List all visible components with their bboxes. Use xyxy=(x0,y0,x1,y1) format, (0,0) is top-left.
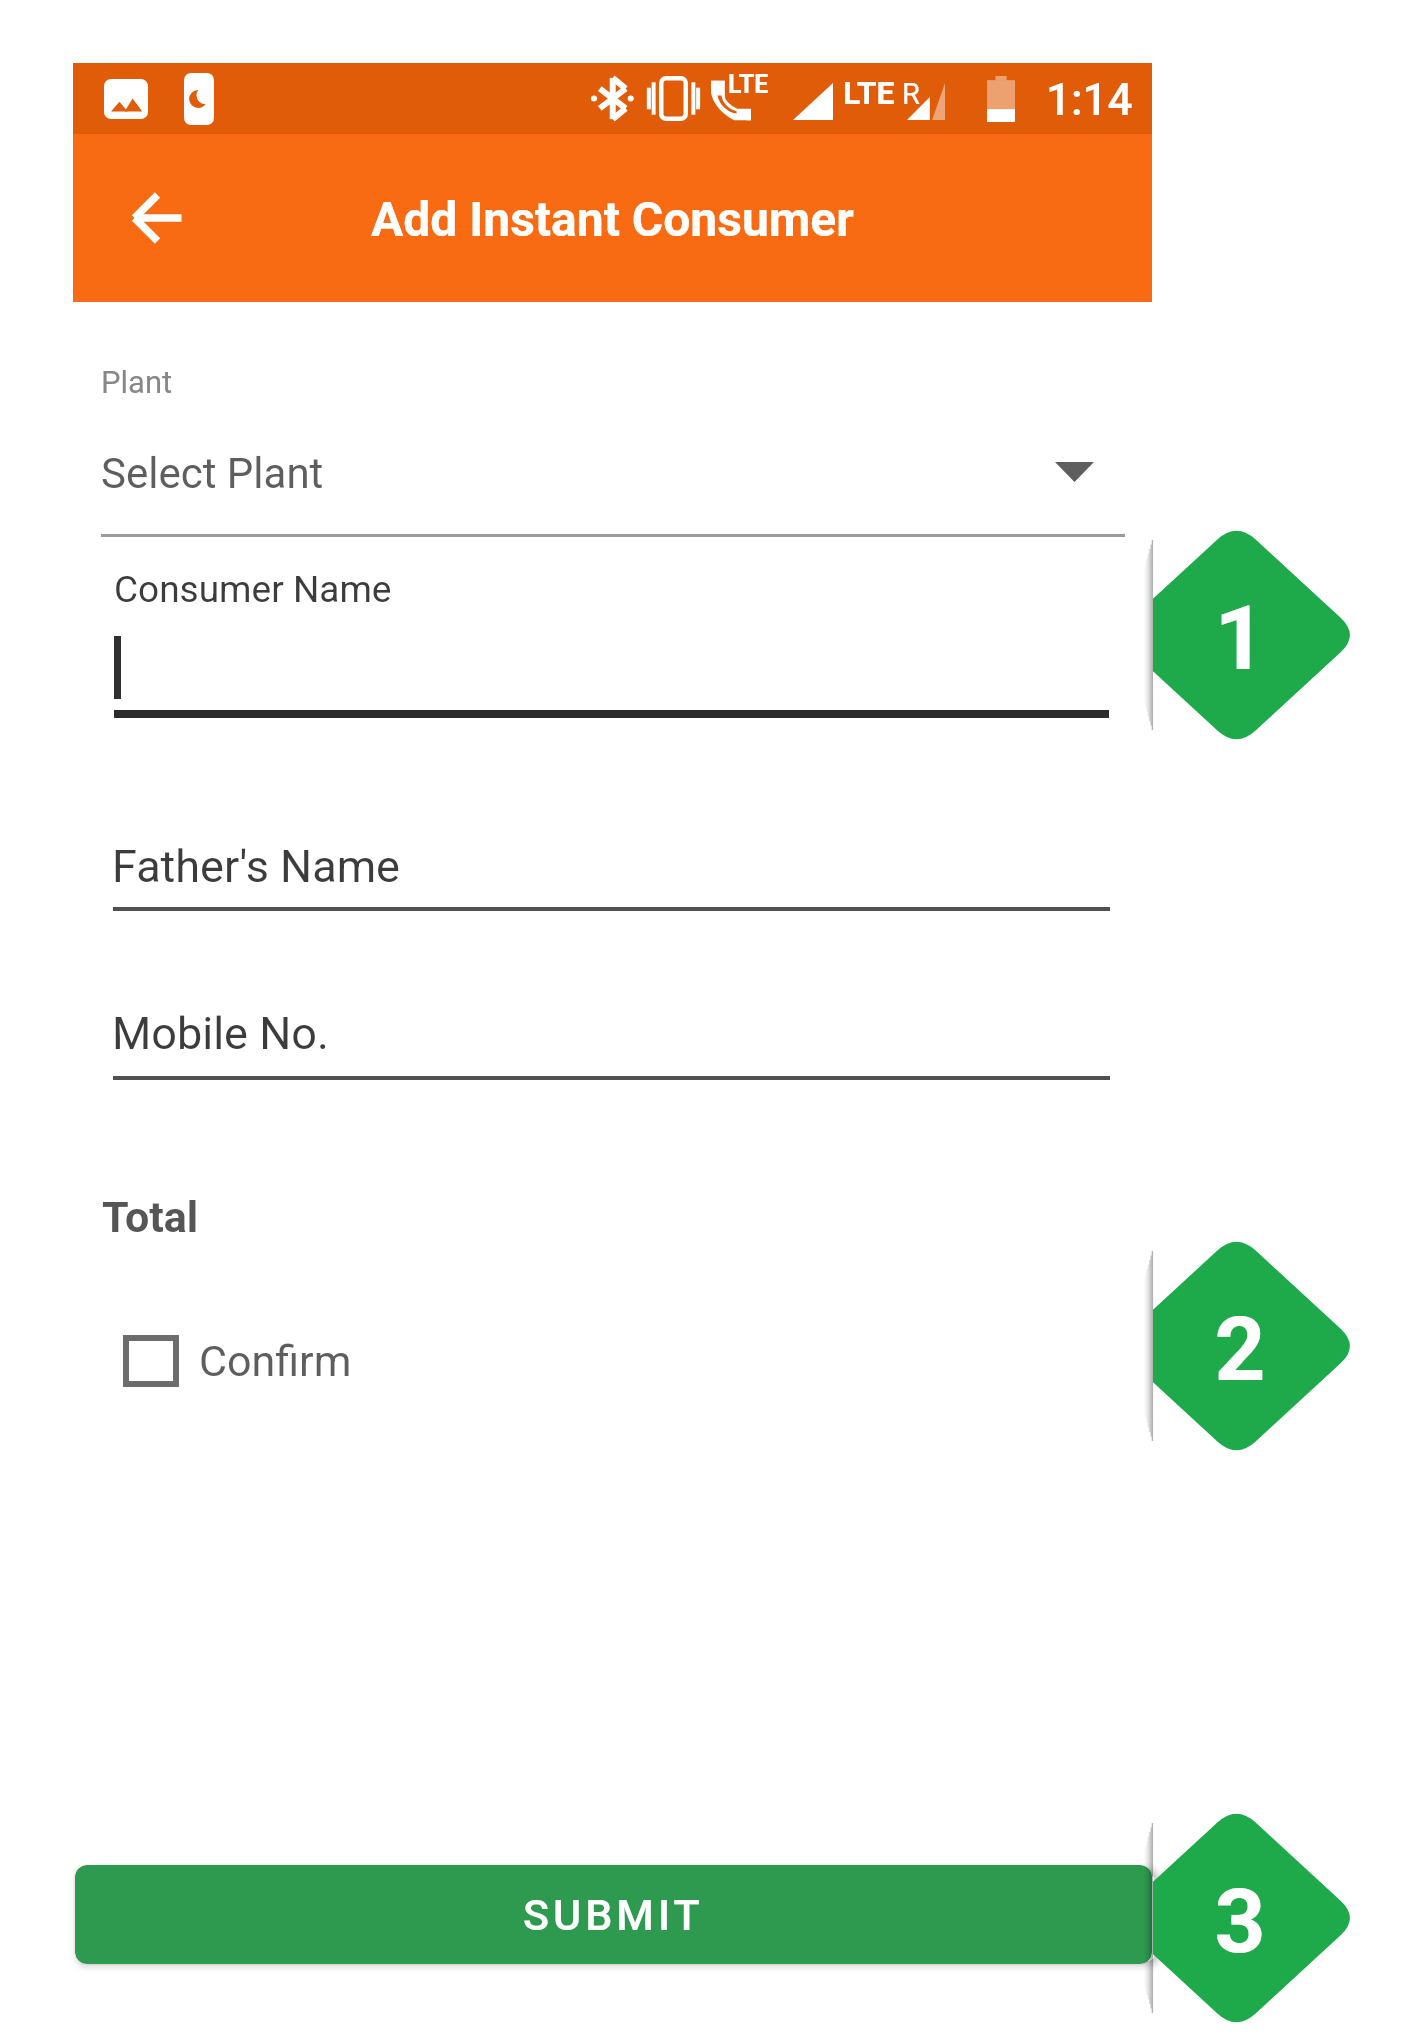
button[interactable]: Mobile No. xyxy=(112,999,1110,1080)
staticText: Consumer Name xyxy=(114,568,392,611)
staticText: Plant xyxy=(101,364,173,400)
button[interactable]: Father's Name xyxy=(112,832,1110,911)
staticText: 1 xyxy=(1214,586,1266,690)
staticText: Confirm xyxy=(199,1336,352,1386)
staticText: Select Plant xyxy=(101,449,324,498)
staticText: 2 xyxy=(1214,1297,1266,1401)
staticText: Add Instant Consumer xyxy=(371,191,854,247)
staticText: Mobile No. xyxy=(112,1007,329,1060)
staticText: Father's Name xyxy=(112,840,400,893)
staticText: LTE xyxy=(843,74,895,112)
button[interactable]: SUBMIT xyxy=(75,1865,1152,1964)
button[interactable]: Select Plant xyxy=(101,427,1125,519)
staticText: Total xyxy=(102,1192,199,1242)
staticText: R xyxy=(902,77,920,111)
button[interactable]: Consumer Name xyxy=(114,560,1109,718)
staticText: 1:14 xyxy=(1046,74,1133,126)
button[interactable]: Confirm xyxy=(123,1330,352,1392)
button[interactable]: Back xyxy=(101,163,211,273)
staticText: LTE xyxy=(728,70,769,99)
staticText: SUBMIT xyxy=(523,1890,704,1940)
staticText: 3 xyxy=(1214,1869,1266,1973)
